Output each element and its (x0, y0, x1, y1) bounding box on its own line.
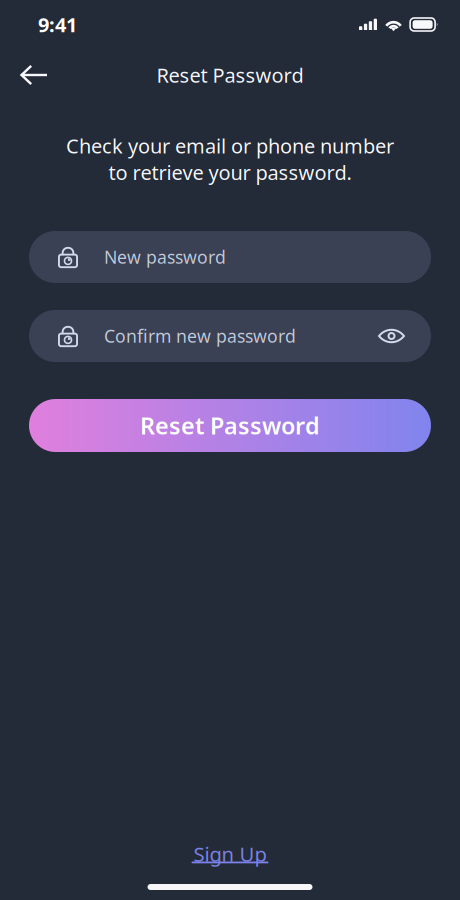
staticText: Confirm new password (104, 324, 296, 348)
staticText: Reset Password (156, 62, 303, 88)
staticText: New password (104, 245, 226, 269)
button[interactable]: New password (29, 231, 431, 283)
button[interactable]: Show password (368, 315, 415, 356)
button[interactable]: Confirm new password (29, 310, 431, 362)
staticText: 9:41 (38, 11, 77, 38)
staticText: to retrieve your password. (108, 159, 351, 186)
staticText: Reset Password (140, 410, 320, 441)
button[interactable]: Reset Password (29, 399, 431, 452)
button[interactable]: Sign Up (175, 841, 285, 867)
staticText: Check your email or phone number (66, 132, 394, 159)
button[interactable]: Back (0, 51, 62, 98)
staticText: Sign Up (193, 840, 266, 867)
